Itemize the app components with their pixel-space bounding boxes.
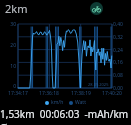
staticText: Watt [75,99,86,106]
staticText: 28.09.2025 [88,82,109,87]
staticText: 0,32 [113,34,123,41]
button[interactable]: Activity type: cycling [90,2,103,15]
staticText: 17:34:17 [3,90,33,97]
button[interactable] [0,0,131,125]
staticText: 0,16 [113,59,123,66]
staticText: 30 [1,21,16,28]
staticText: 0,40 [113,21,123,28]
staticText: 20 [1,42,16,49]
button[interactable]: 2km [5,1,28,16]
staticText: 10 [1,63,16,70]
staticText: 1,53km 00:06:03 -mAh/km Ø [0,107,131,125]
staticText: 17:36:18 [34,90,64,97]
staticText: 0,00 [113,85,123,92]
staticText: 0 [1,83,16,90]
staticText: km/h [51,99,64,106]
staticText: 17:40:20 [97,90,127,97]
staticText: 2km [5,1,28,16]
staticText: 0,08 [113,72,123,79]
staticText: 0,24 [113,47,123,54]
button[interactable]: 1,53km 00:06:03 -mAh/km Ø [0,107,131,125]
button[interactable]: km/h [0,99,131,106]
staticText: 17:38:19 [66,90,96,97]
